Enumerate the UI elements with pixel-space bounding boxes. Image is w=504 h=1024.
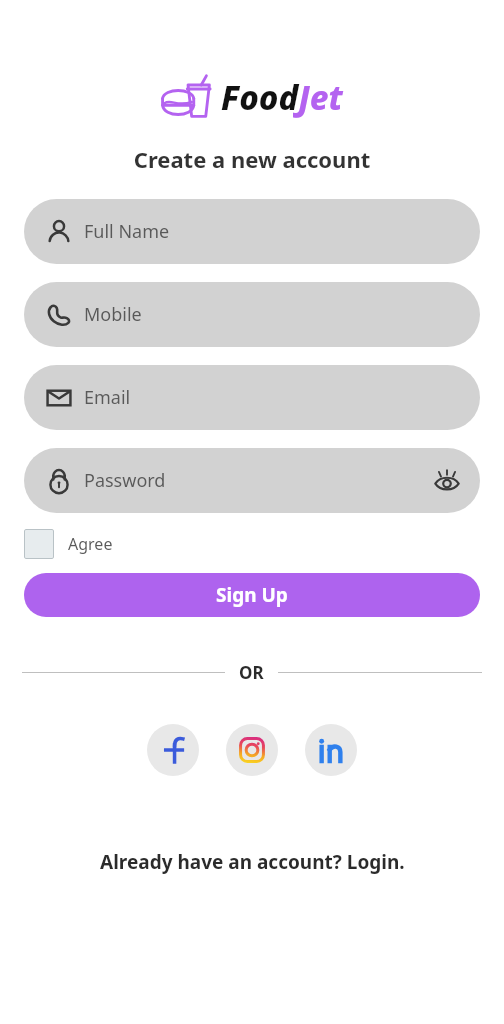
- staticText: Sign Up: [216, 582, 288, 608]
- staticText: Create a new account: [0, 144, 504, 174]
- button[interactable]: Sign Up: [24, 573, 480, 617]
- button[interactable]: Sign up with LinkedIn: [305, 724, 357, 776]
- staticText: Password: [84, 468, 166, 493]
- button[interactable]: Already have an account? Login.: [0, 849, 504, 875]
- staticText: Full Name: [84, 219, 170, 244]
- button[interactable]: Password: [24, 448, 480, 513]
- button[interactable]: Show password: [432, 466, 462, 496]
- staticText: FoodJet: [221, 75, 343, 120]
- button[interactable]: Mobile: [24, 282, 480, 347]
- staticText: Email: [84, 385, 131, 410]
- button[interactable]: Email: [24, 365, 480, 430]
- staticText: Agree: [68, 533, 113, 555]
- button[interactable]: Sign up with Facebook: [147, 724, 199, 776]
- staticText: OR: [239, 661, 264, 684]
- staticText: Mobile: [84, 302, 142, 327]
- button[interactable]: Sign up with Instagram: [226, 724, 278, 776]
- staticText: Already have an account? Login.: [100, 849, 405, 875]
- button[interactable]: Full Name: [24, 199, 480, 264]
- button[interactable]: Agree: [24, 529, 113, 559]
